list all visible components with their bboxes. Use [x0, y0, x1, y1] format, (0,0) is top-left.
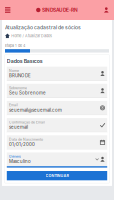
staticText: seuemail@seuemail.com: [9, 107, 62, 113]
staticText: Gênero: [9, 154, 21, 159]
button[interactable]: Data de Nascimento: [7, 135, 107, 149]
staticText: Confirmação de Email: [9, 120, 45, 124]
staticText: Nome: [9, 69, 19, 73]
button[interactable]: Gênero: [7, 152, 107, 168]
staticText: Masculino: [9, 159, 31, 164]
staticText: Dados Básicos: [7, 58, 43, 64]
button[interactable]: Nome: [7, 67, 107, 81]
button[interactable]: Email: [7, 101, 107, 115]
button[interactable]: Sobrenome: [7, 84, 107, 98]
staticText: Atualizar Dados: [25, 33, 52, 38]
staticText: 01/01/2000: [9, 142, 35, 147]
button[interactable]: CONTINUAR: [7, 171, 107, 180]
staticText: Atualização cadastral de sócios: [5, 24, 81, 30]
button[interactable]: Account: [99, 0, 114, 20]
staticText: CONTINUAR: [45, 173, 68, 178]
staticText: Email: [9, 103, 18, 107]
staticText: seuemail: [9, 124, 28, 130]
staticText: BRUNO DE: [9, 73, 31, 78]
button[interactable]: Confirmação de Email: [7, 118, 107, 132]
staticText: Etapa 1 de 4: [5, 43, 25, 48]
staticText: Sobrenome: [9, 86, 27, 90]
staticText: Data de Nascimento: [9, 137, 43, 141]
staticText: Seu Sobrenome: [9, 90, 46, 95]
staticText: Home: [11, 33, 21, 38]
button[interactable]: Menu: [0, 0, 15, 20]
staticText: SINDSAÚDE-RN: [42, 7, 78, 13]
staticText: /: [23, 33, 24, 38]
